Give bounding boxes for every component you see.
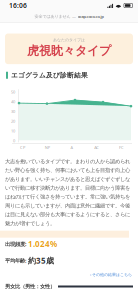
staticText: 1.024% (28, 239, 57, 249)
staticText: 出現頻度: (5, 240, 26, 247)
staticText: 安全ではありません (34, 14, 70, 19)
staticText: — (72, 14, 76, 19)
staticText: 男女比（男性：女性） (5, 283, 55, 290)
staticText: 虎視眈々タイプ (27, 43, 111, 58)
staticText: A (70, 145, 73, 150)
staticText: 40 (11, 99, 15, 104)
staticText: FC (119, 145, 124, 150)
staticText: 50 (11, 89, 15, 95)
staticText: 約35歳 (28, 255, 54, 266)
staticText: あなたのタイプは (53, 37, 85, 42)
staticText: 平均年齢: (5, 257, 26, 264)
button[interactable]: › その他の結果はこちら (0, 272, 138, 277)
staticText: ocap.coco.co.jp (77, 14, 103, 19)
staticText: NP (45, 145, 50, 150)
staticText: 30 (11, 109, 15, 114)
staticText: 0 (13, 138, 15, 143)
staticText: 大志を抱いているタイプです。まわりの人から認められたい野心を強く持ち、何事におい… (5, 158, 130, 227)
staticText: 16:06 (9, 1, 27, 10)
staticText: › その他の結果はこちら (90, 272, 132, 277)
staticText: 10 (11, 128, 15, 134)
staticText: エゴグラム及び診断結果 (11, 71, 88, 79)
staticText: AC (94, 145, 99, 150)
staticText: 20 (11, 119, 15, 124)
staticText: CP (20, 145, 25, 150)
